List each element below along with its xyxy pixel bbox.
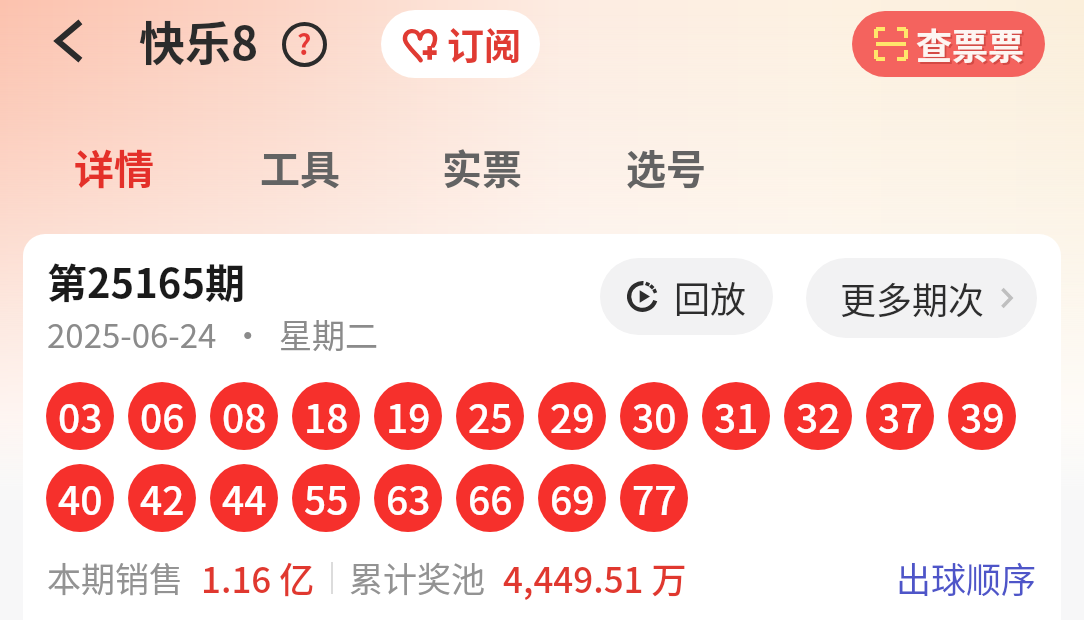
staticText: 实票	[442, 138, 522, 196]
button[interactable]: 工具	[250, 132, 350, 202]
staticText: 回放	[674, 271, 747, 323]
staticText: 69	[550, 470, 595, 526]
staticText: 63	[386, 470, 431, 526]
staticText: 30	[632, 388, 677, 444]
button[interactable]: Back	[39, 12, 97, 70]
staticText: 更多期次	[840, 272, 985, 324]
staticText: 66	[468, 470, 513, 526]
button[interactable]: Help	[282, 22, 327, 67]
button[interactable]: 出球顺序	[896, 552, 1037, 603]
staticText: 出球顺序	[896, 552, 1037, 603]
button[interactable]: 更多期次	[806, 258, 1037, 338]
button[interactable]: 选号	[616, 132, 716, 202]
staticText: 查票票	[918, 20, 1027, 72]
staticText: 19	[386, 388, 431, 444]
staticText: 18	[304, 388, 349, 444]
staticText: 44	[222, 470, 267, 526]
staticText: 详情	[74, 138, 154, 196]
staticText: 37	[878, 388, 923, 444]
staticText: 2025-06-24 · 星期二	[47, 310, 378, 358]
button[interactable]: 实票	[432, 132, 532, 202]
staticText: 39	[960, 388, 1005, 444]
staticText: 31	[714, 388, 759, 444]
button[interactable]: 回放	[600, 258, 773, 335]
staticText: 08	[222, 388, 267, 444]
staticText: 选号	[626, 138, 706, 196]
staticText: 累计奖池	[349, 553, 485, 602]
button[interactable]: 订阅	[381, 10, 540, 78]
staticText: 40	[58, 470, 103, 526]
staticText: 03	[58, 388, 103, 444]
staticText: 29	[550, 388, 595, 444]
staticText: 查票票	[916, 18, 1025, 70]
staticText: 工具	[260, 138, 340, 196]
staticText: 4,449.51 万	[503, 552, 687, 603]
staticText: 本期销售	[47, 553, 183, 602]
staticText: 25	[468, 388, 513, 444]
staticText: 32	[796, 388, 841, 444]
button[interactable]: 查票票	[852, 11, 1045, 77]
staticText: ?	[297, 23, 312, 64]
button[interactable]: 详情	[64, 132, 164, 202]
staticText: 1.16 亿	[201, 552, 315, 603]
staticText: 42	[140, 470, 185, 526]
staticText: 快乐8	[139, 7, 259, 74]
staticText: 第25165期	[47, 252, 245, 310]
staticText: 订阅	[447, 17, 521, 71]
staticText: 77	[632, 470, 677, 526]
staticText: 55	[304, 470, 349, 526]
staticText: 06	[140, 388, 185, 444]
